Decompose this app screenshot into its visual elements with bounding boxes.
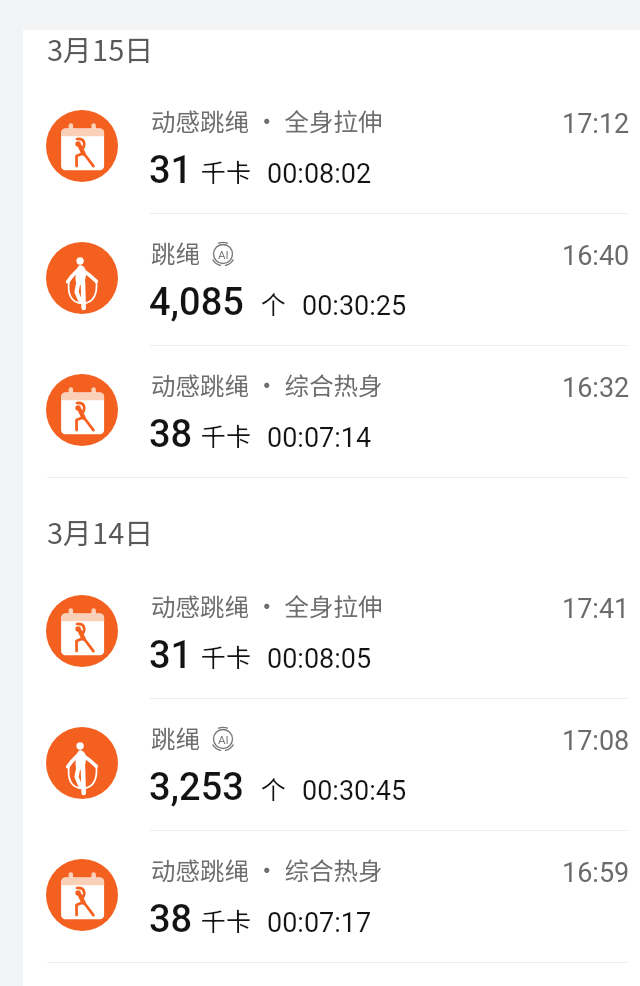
button[interactable]: 动感跳绳 · 综合热身 (23, 346, 640, 478)
staticText: 个 (261, 770, 287, 806)
staticText: 动感跳绳 · 综合热身 (151, 852, 383, 887)
staticText: 00:08:05 (267, 643, 372, 675)
button[interactable]: 动感跳绳 · 综合热身 (23, 831, 640, 963)
button[interactable]: 动感跳绳 · 全身拉伸 (23, 567, 640, 699)
staticText: 17:08 (562, 725, 630, 757)
staticText: 16:40 (562, 240, 630, 272)
button[interactable]: 跳绳 (23, 699, 640, 831)
staticText: 动感跳绳 · 全身拉伸 (151, 103, 383, 138)
staticText: 00:30:25 (302, 290, 407, 322)
staticText: 千卡 (201, 417, 252, 453)
staticText: AI (218, 733, 229, 746)
staticText: 17:41 (562, 593, 630, 625)
staticText: 00:07:14 (267, 422, 372, 454)
staticText: 跳绳 (151, 235, 200, 270)
staticText: 动感跳绳 · 全身拉伸 (151, 588, 383, 623)
staticText: 3月15日 (47, 27, 154, 69)
staticText: 16:32 (562, 372, 630, 404)
staticText: 16:59 (562, 857, 630, 889)
staticText: 千卡 (201, 153, 252, 189)
button[interactable]: 动感跳绳 · 全身拉伸 (23, 82, 640, 214)
staticText: AI (218, 248, 229, 261)
staticText: 千卡 (201, 902, 252, 938)
staticText: 动感跳绳 · 综合热身 (151, 367, 383, 402)
staticText: 3,253 (149, 765, 244, 810)
staticText: 17:12 (562, 108, 630, 140)
button[interactable]: 跳绳 (23, 214, 640, 346)
staticText: 千卡 (201, 638, 252, 674)
staticText: 31 (149, 148, 193, 193)
staticText: 38 (149, 897, 193, 942)
staticText: 31 (149, 633, 193, 678)
staticText: 跳绳 (151, 720, 200, 755)
staticText: 4,085 (149, 280, 244, 325)
staticText: 个 (261, 285, 287, 321)
staticText: 00:07:17 (267, 907, 372, 939)
staticText: 00:30:45 (302, 775, 407, 807)
staticText: 3月14日 (47, 510, 154, 552)
staticText: 38 (149, 412, 193, 457)
staticText: 00:08:02 (267, 158, 372, 190)
